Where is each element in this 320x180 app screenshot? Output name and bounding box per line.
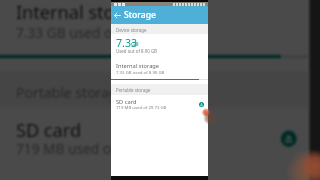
button[interactable]: Eject SD card [195,98,208,111]
staticText: 719 MB used of 29.73 GB [116,104,167,110]
staticText: Device storage [116,27,147,33]
staticText: Portable storage [116,87,151,93]
staticText: 7.33 GB used of 8.90 GB [16,22,172,42]
staticText: Portable storage [16,81,128,101]
staticText: 7.33 [116,36,138,51]
button[interactable] [0,107,309,167]
button[interactable] [0,0,309,52]
staticText: 7.33 GB used of 8.90 GB [116,69,165,75]
staticText: Used out of 8.90 GB [116,48,157,54]
staticText: Internal storage [116,62,160,70]
button[interactable] [111,58,208,78]
button[interactable] [111,95,208,113]
staticText: Storage [124,9,156,21]
staticText: Internal storage [16,0,156,25]
staticText: SD card [116,98,137,106]
button[interactable]: Eject SD card [268,117,309,160]
staticText: 719 MB used of 29.73 GB [16,137,179,157]
button[interactable]: Back [111,9,124,22]
staticText: GB [131,40,139,48]
staticText: SD card [16,117,83,144]
